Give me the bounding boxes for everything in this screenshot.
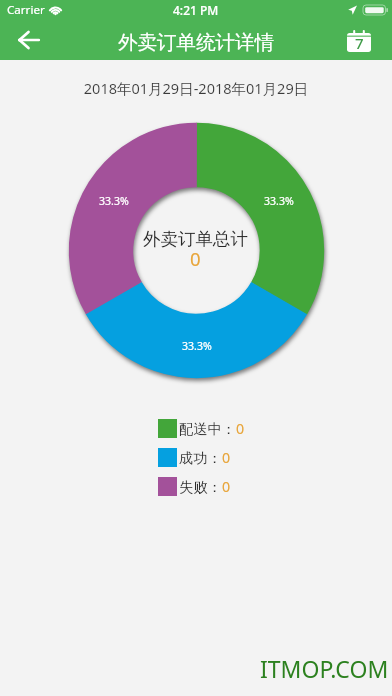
staticText: 0 [236,419,244,438]
staticText: 33.3% [99,194,129,208]
button[interactable]: 成功： [158,448,244,467]
staticText: 外卖订单统计详情 [118,30,274,55]
button[interactable]: Select date [336,20,392,60]
staticText: 外卖订单总计 [143,228,248,250]
staticText: 0 [222,448,231,467]
staticText: 33.3% [182,339,212,353]
staticText: 0 [222,477,231,496]
staticText: ITMOP.COM [260,653,389,684]
staticText: 0 [190,246,201,271]
button[interactable]: 失败： [158,477,244,496]
staticText: 33.3% [264,194,294,208]
staticText: 成功： [179,449,222,467]
button[interactable]: Back [0,20,56,60]
button[interactable]: 配送中： [158,419,244,438]
staticText: 7 [355,33,364,53]
staticText: Carrier [7,2,45,18]
staticText: 4:21 PM [173,2,219,18]
staticText: 2018年01月29日-2018年01月29日 [0,78,392,98]
staticText: 失败： [179,478,222,496]
staticText: 配送中： [179,420,236,438]
